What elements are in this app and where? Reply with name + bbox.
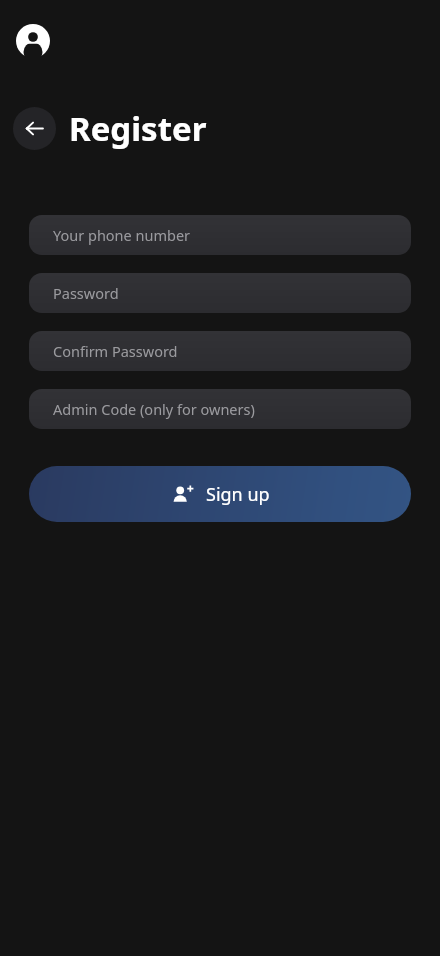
staticText: Register [69, 106, 207, 151]
button[interactable]: Admin Code (only for owners) [29, 389, 411, 429]
button[interactable]: Confirm Password [29, 331, 411, 371]
button[interactable]: Password [29, 273, 411, 313]
staticText: Confirm Password [53, 341, 178, 361]
button[interactable]: Sign up [29, 466, 411, 522]
staticText: Sign up [206, 482, 270, 507]
button[interactable]: Account [14, 22, 52, 60]
staticText: Password [53, 283, 119, 303]
button[interactable]: Your phone number [29, 215, 411, 255]
staticText: Admin Code (only for owners) [53, 399, 255, 419]
button[interactable]: Back [13, 107, 56, 150]
staticText: Your phone number [53, 225, 191, 245]
